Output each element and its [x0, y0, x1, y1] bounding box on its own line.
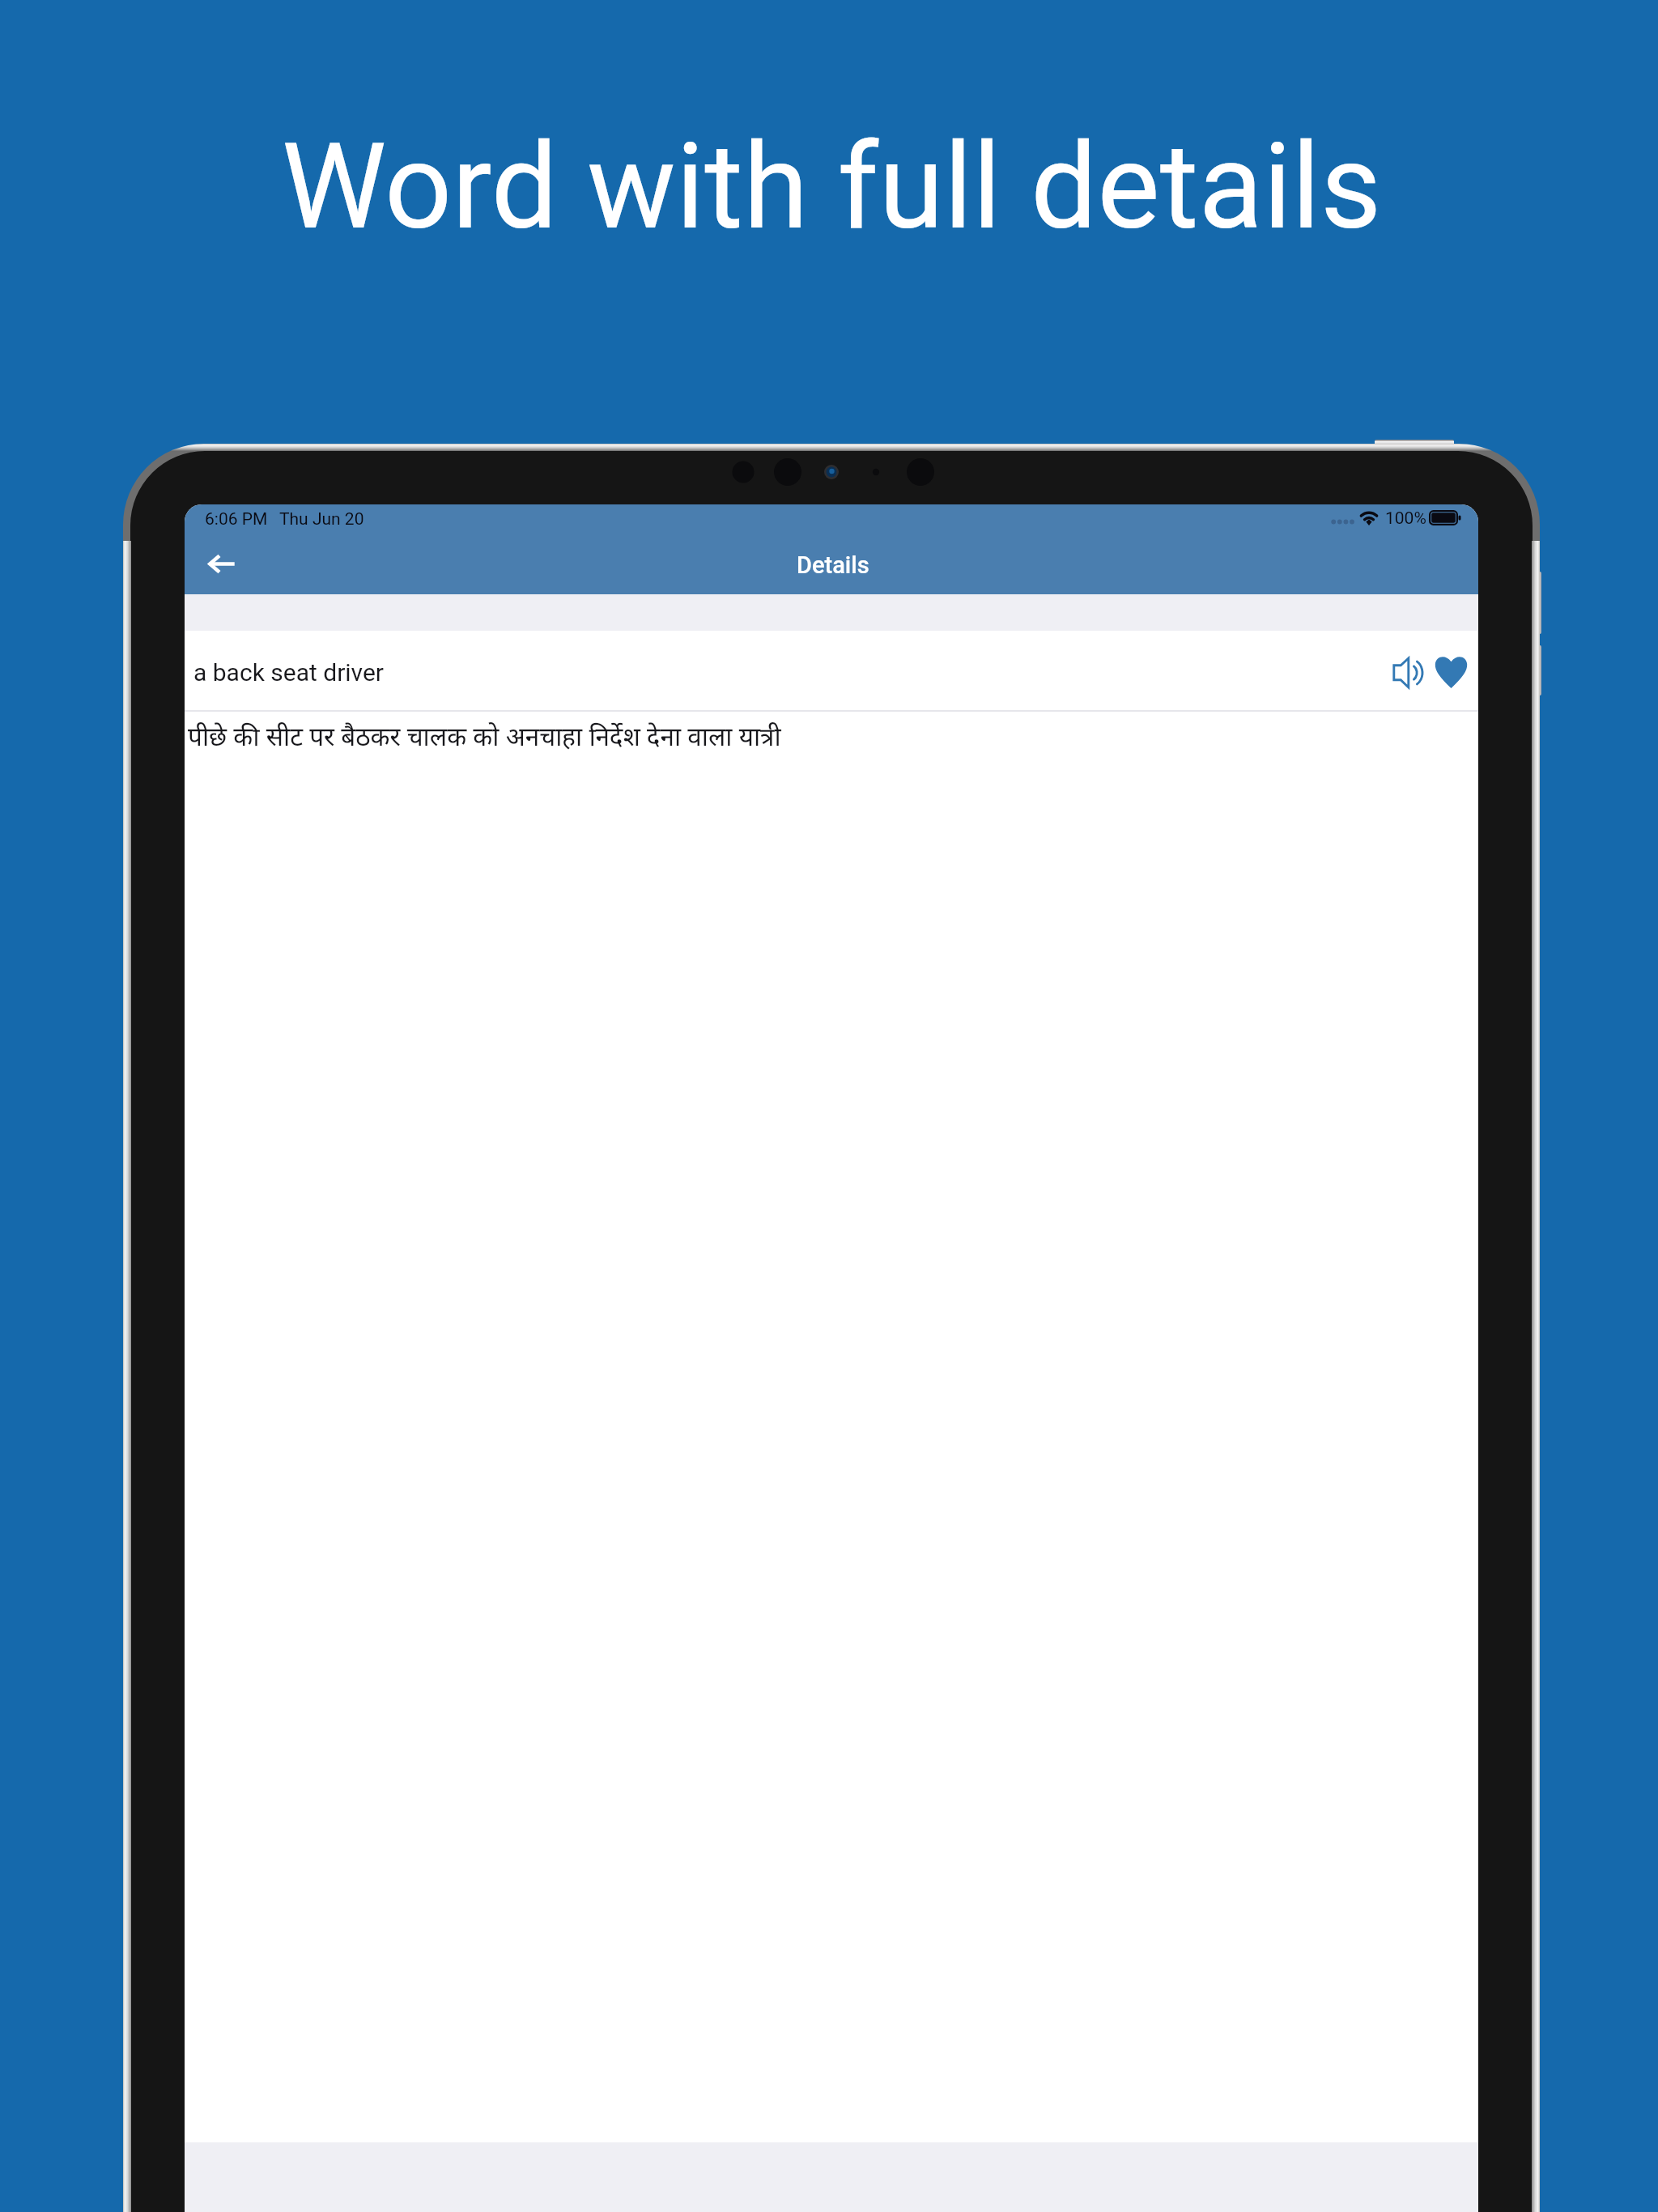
button[interactable]: Add to favourites [1428, 649, 1474, 695]
staticText: 100% [1385, 508, 1426, 529]
button[interactable]: Play pronunciation [1384, 649, 1431, 696]
staticText: पीछे की सीट पर बैठकर चालक को अनचाहा निर्… [188, 718, 781, 753]
staticText: 6:06 PM [205, 509, 268, 530]
staticText: Details [797, 551, 869, 579]
button[interactable]: a back seat driver [185, 631, 1478, 710]
staticText: a back seat driver [193, 658, 385, 687]
button[interactable]: Back [194, 536, 250, 591]
staticText: Thu Jun 20 [279, 509, 364, 530]
staticText: Word with full details [2, 118, 1658, 257]
